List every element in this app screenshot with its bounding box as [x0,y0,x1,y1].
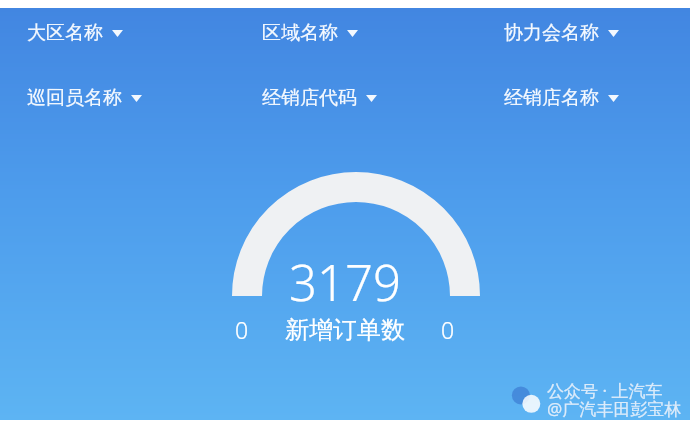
button[interactable]: 区域名称 [262,21,358,45]
staticText: 经销店名称 [504,86,599,110]
button[interactable]: 经销店名称 [504,86,619,110]
button[interactable]: 协力会名称 [504,21,619,45]
button[interactable]: 大区名称 [27,21,123,45]
staticText: 协力会名称 [504,21,599,45]
staticText: 公众号 · 上汽车 [547,379,663,402]
staticText: 3179 [289,249,401,316]
staticText: 经销店代码 [262,86,357,110]
button[interactable]: WeChat and Weibo account [509,384,682,414]
button[interactable]: 巡回员名称 [27,86,142,110]
staticText: 巡回员名称 [27,86,122,110]
staticText: @广汽丰田彭宝林 [547,397,682,420]
staticText: 0 [235,314,249,345]
staticText: 0 [441,314,455,345]
button[interactable]: 经销店代码 [262,86,377,110]
staticText: 大区名称 [27,21,103,45]
staticText: 区域名称 [262,21,338,45]
staticText: 新增订单数 [285,315,405,345]
